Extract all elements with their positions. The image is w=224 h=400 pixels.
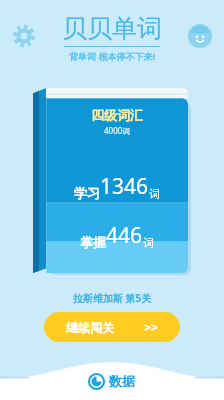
staticText: 贝贝单词: [62, 13, 162, 44]
button[interactable]: 四级词汇: [33, 88, 188, 273]
staticText: 1346: [100, 172, 149, 201]
button[interactable]: 数据: [89, 373, 135, 389]
staticText: 拉斯维加斯 第5关: [73, 291, 152, 305]
staticText: 词: [143, 236, 154, 250]
staticText: 4000词: [104, 125, 131, 136]
button[interactable]: Profile: [188, 24, 212, 48]
staticText: 继续闯关: [66, 320, 114, 335]
staticText: >>: [144, 319, 158, 335]
button[interactable]: Settings: [12, 24, 36, 48]
staticText: 四级词汇: [91, 107, 143, 123]
staticText: 背单词 根本停不下来!: [69, 50, 155, 62]
staticText: 数据: [109, 373, 135, 389]
button[interactable]: 继续闯关: [44, 312, 180, 342]
staticText: 掌握: [80, 234, 106, 250]
staticText: 词: [149, 187, 160, 201]
staticText: 446: [106, 221, 143, 250]
staticText: 学习: [74, 185, 100, 201]
